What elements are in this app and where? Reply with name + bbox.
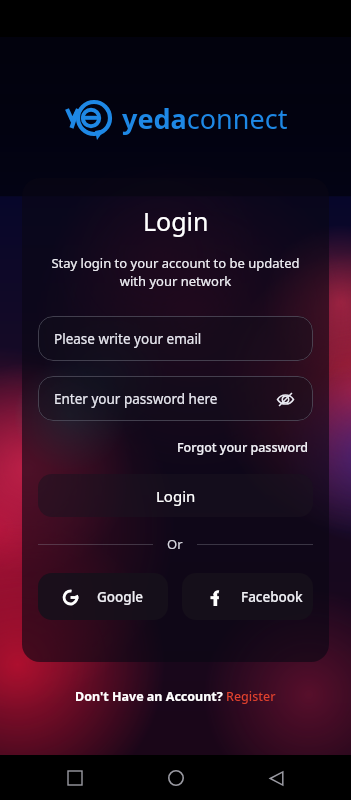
button[interactable]: Facebook	[182, 573, 313, 620]
button[interactable]: Show password	[273, 387, 297, 411]
staticText: Please write your email	[54, 330, 202, 348]
staticText: Facebook	[241, 588, 303, 606]
button[interactable]: Forgot your password	[173, 435, 313, 460]
button[interactable]: Back	[259, 761, 293, 795]
staticText: Enter your password here	[54, 390, 218, 408]
staticText: Or	[167, 535, 183, 553]
button[interactable]: Login	[38, 474, 313, 517]
button[interactable]: Home	[159, 761, 193, 795]
staticText: yedaconnect	[122, 100, 288, 137]
button[interactable]: Enter your password here	[38, 376, 313, 421]
button[interactable]: yedaconnect	[64, 95, 288, 141]
staticText: Login	[143, 204, 209, 238]
button[interactable]: Please write your email	[38, 316, 313, 361]
button[interactable]: Recent apps	[58, 761, 92, 795]
staticText: Login	[156, 486, 196, 506]
button[interactable]: Don't Have an Account? Register	[71, 684, 280, 709]
staticText: Stay login to your account to be updated…	[40, 254, 311, 290]
staticText: Google	[97, 588, 144, 606]
button[interactable]: Google	[38, 573, 168, 620]
